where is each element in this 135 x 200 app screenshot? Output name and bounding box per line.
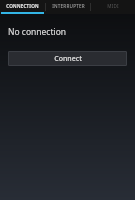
button[interactable]: CONNECTION	[0, 0, 45, 14]
staticText: CONNECTION	[6, 3, 39, 9]
staticText: INTERRUPTER	[52, 3, 85, 9]
button[interactable]: MIDI	[91, 0, 135, 14]
button[interactable]: Connect	[8, 51, 127, 66]
staticText: No connection	[8, 26, 67, 38]
staticText: MIDI	[107, 3, 119, 9]
staticText: Connect	[54, 54, 82, 64]
button[interactable]: INTERRUPTER	[46, 0, 90, 14]
